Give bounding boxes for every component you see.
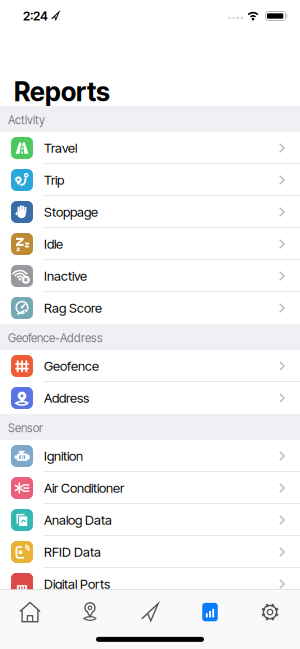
staticText: Sensor bbox=[8, 421, 43, 435]
button[interactable]: Home bbox=[0, 602, 60, 622]
staticText: Air Conditioner bbox=[44, 480, 124, 496]
staticText: Idle bbox=[44, 236, 63, 252]
button[interactable]: Air Conditioner bbox=[0, 472, 300, 504]
staticText: Travel bbox=[44, 140, 77, 156]
staticText: Geofence bbox=[44, 358, 99, 374]
staticText: Ignition bbox=[44, 448, 83, 464]
button[interactable]: Trip bbox=[0, 164, 300, 196]
button[interactable]: Idle bbox=[0, 228, 300, 260]
button[interactable]: Navigation bbox=[120, 603, 180, 622]
button[interactable]: Ignition bbox=[0, 440, 300, 472]
button[interactable]: Address bbox=[0, 382, 300, 414]
button[interactable]: Rag Score bbox=[0, 292, 300, 324]
staticText: Geofence-Address bbox=[8, 331, 103, 345]
staticText: RFID Data bbox=[44, 544, 101, 560]
staticText: Inactive bbox=[44, 268, 87, 284]
button[interactable]: Reports bbox=[180, 603, 240, 622]
button[interactable]: Analog Data bbox=[0, 504, 300, 536]
button[interactable]: RFID Data bbox=[0, 536, 300, 568]
staticText: Reports bbox=[14, 76, 110, 107]
button[interactable]: Travel bbox=[0, 132, 300, 164]
staticText: Digital Ports bbox=[44, 576, 110, 592]
button[interactable]: Digital Ports bbox=[0, 568, 300, 600]
staticText: Analog Data bbox=[44, 512, 112, 528]
button[interactable]: Tracking bbox=[60, 602, 120, 622]
button[interactable]: Settings bbox=[240, 603, 300, 622]
staticText: Activity bbox=[8, 113, 45, 127]
button[interactable]: Geofence bbox=[0, 350, 300, 382]
staticText: Trip bbox=[44, 172, 64, 188]
staticText: Rag Score bbox=[44, 300, 102, 316]
staticText: 2:24 bbox=[23, 8, 48, 23]
staticText: Stoppage bbox=[44, 204, 98, 220]
button[interactable]: Stoppage bbox=[0, 196, 300, 228]
button[interactable]: Inactive bbox=[0, 260, 300, 292]
staticText: Address bbox=[44, 390, 89, 406]
